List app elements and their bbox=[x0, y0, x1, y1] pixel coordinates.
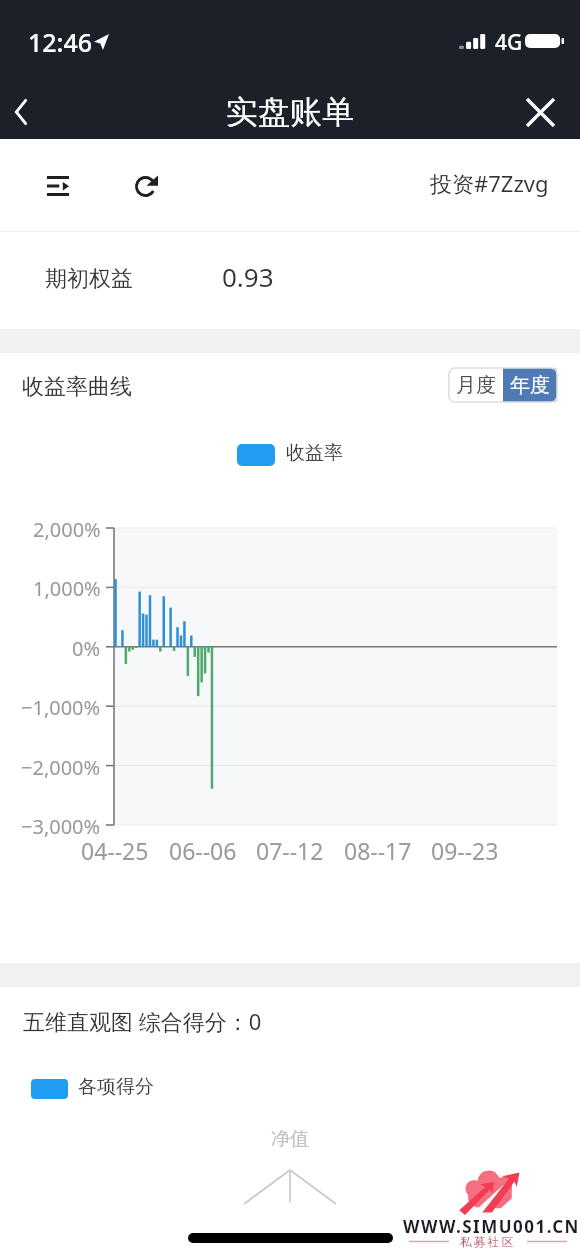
staticText: 五维直观图 综合得分：0 bbox=[23, 1006, 262, 1036]
staticText: 07--12 bbox=[256, 835, 324, 866]
staticText: 12:46 bbox=[28, 25, 93, 59]
button[interactable]: Close bbox=[511, 84, 569, 140]
staticText: 月度 bbox=[456, 373, 496, 398]
staticText: 09--23 bbox=[431, 835, 499, 866]
staticText: 净值 bbox=[271, 1127, 309, 1151]
button[interactable]: 月度 bbox=[449, 368, 503, 402]
staticText: 4G bbox=[495, 28, 523, 57]
staticText: 收益率 bbox=[286, 441, 343, 465]
staticText: 实盘账单 bbox=[226, 92, 354, 132]
staticText: 04--25 bbox=[81, 835, 149, 866]
button[interactable]: Back bbox=[0, 84, 42, 140]
staticText: 年度 bbox=[510, 373, 550, 398]
staticText: 收益率曲线 bbox=[22, 373, 132, 401]
staticText: −3,000% bbox=[21, 813, 101, 840]
button[interactable]: Sort order bbox=[34, 162, 82, 210]
staticText: 08--17 bbox=[344, 835, 412, 866]
staticText: 0% bbox=[72, 635, 101, 662]
staticText: 0.93 bbox=[222, 259, 274, 294]
button[interactable]: 年度 bbox=[503, 368, 557, 402]
staticText: 06--06 bbox=[169, 835, 237, 866]
button[interactable]: Refresh bbox=[122, 162, 170, 210]
staticText: WWW.SIMU001.CN bbox=[403, 1215, 580, 1238]
staticText: 2,000% bbox=[33, 516, 101, 543]
staticText: 投资#7Zzvg bbox=[430, 168, 549, 198]
staticText: −1,000% bbox=[21, 694, 101, 721]
staticText: 各项得分 bbox=[78, 1075, 154, 1099]
staticText: 1,000% bbox=[33, 575, 101, 602]
staticText: 期初权益 bbox=[45, 265, 133, 293]
staticText: −2,000% bbox=[21, 754, 101, 781]
staticText: 私募社区 bbox=[460, 1234, 516, 1249]
